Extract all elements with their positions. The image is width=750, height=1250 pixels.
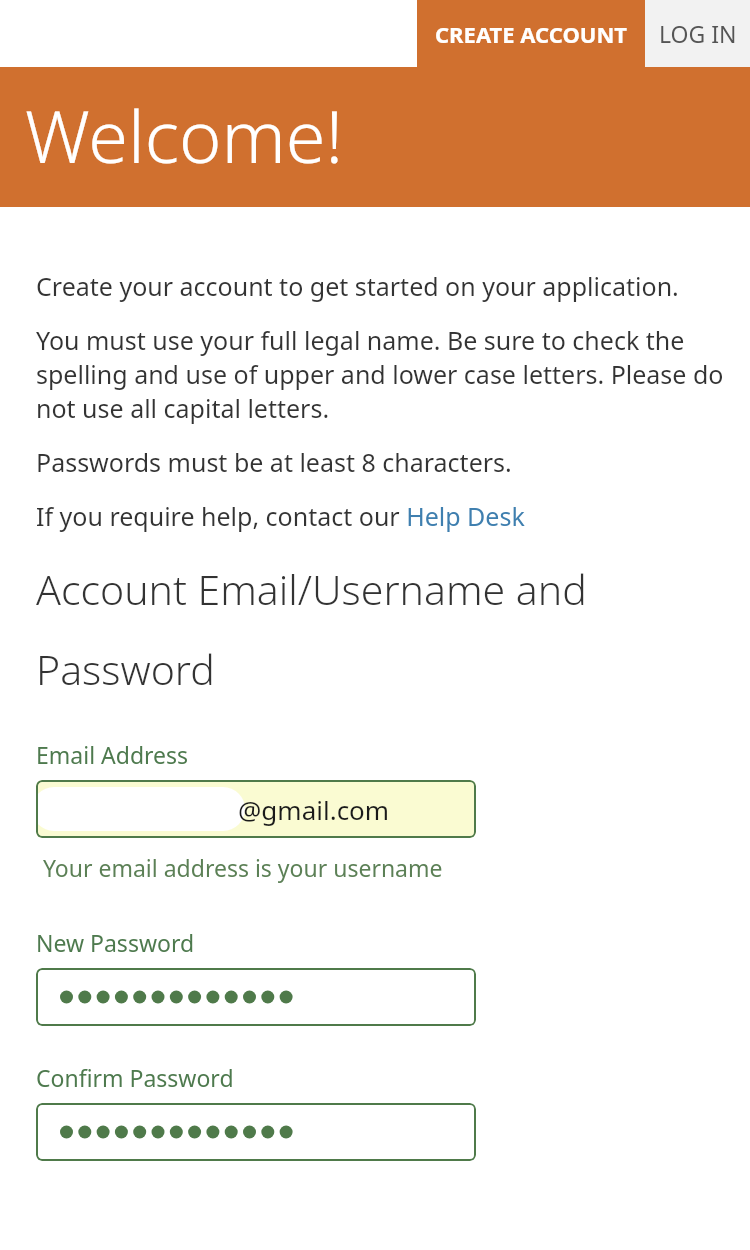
- staticText: New Password: [36, 927, 195, 958]
- staticText: Create your account to get started on yo…: [36, 269, 679, 303]
- staticText: LOG IN: [659, 18, 737, 49]
- staticText: Passwords must be at least 8 characters.: [36, 445, 512, 479]
- staticText: You must use your full legal name. Be su…: [36, 323, 726, 425]
- staticText: @gmail.com: [238, 792, 390, 827]
- staticText: Email Address: [36, 739, 189, 770]
- staticText: Your email address is your username: [43, 852, 443, 883]
- staticText: Account Email/Username and Password: [36, 561, 716, 697]
- staticText: If you require help, contact our Help De…: [36, 499, 525, 533]
- button[interactable]: @gmail.com: [36, 780, 476, 838]
- button[interactable]: Password entry: [36, 968, 476, 1026]
- button[interactable]: LOG IN: [645, 0, 750, 67]
- button[interactable]: If you require help, contact our Help De…: [36, 499, 525, 533]
- staticText: Confirm Password: [36, 1062, 234, 1093]
- button[interactable]: Password entry: [36, 1103, 476, 1161]
- button[interactable]: CREATE ACCOUNT: [417, 0, 645, 67]
- staticText: CREATE ACCOUNT: [435, 19, 628, 49]
- staticText: Welcome!: [25, 86, 344, 184]
